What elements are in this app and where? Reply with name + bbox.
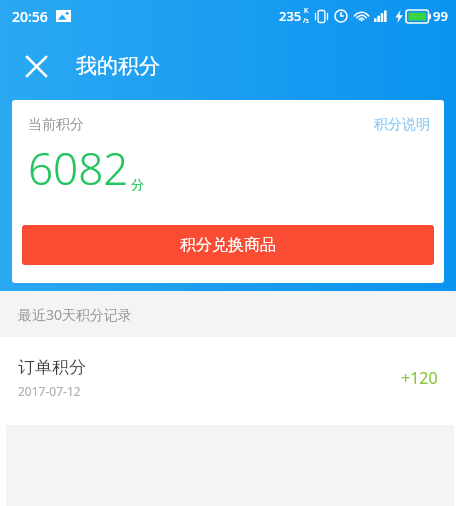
staticText: K [304,6,309,16]
staticText: 235 [279,7,302,25]
staticText: 积分说明 [374,116,430,134]
staticText: 6082 [28,138,129,198]
staticText: /s [303,16,309,26]
button[interactable]: Close [14,44,58,88]
button[interactable]: 积分兑换商品 [22,225,434,265]
staticText: 99 [433,7,448,25]
staticText: 最近30天积分记录 [18,305,133,324]
staticText: 订单积分 [18,357,86,378]
staticText: 2017-07-12 [18,383,81,399]
staticText: 积分兑换商品 [180,235,276,255]
staticText: +120 [401,367,438,389]
button[interactable]: 订单积分 [0,337,456,419]
staticText: 当前积分 [28,116,84,134]
staticText: 分 [131,176,144,192]
staticText: 我的积分 [76,53,160,79]
button[interactable]: 积分说明 [374,116,430,134]
staticText: 20:56 [12,7,48,26]
